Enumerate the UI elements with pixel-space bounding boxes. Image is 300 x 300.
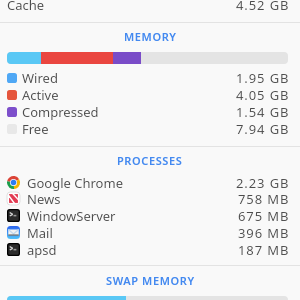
staticText: 4.52 GB xyxy=(236,0,290,13)
staticText: Google Chrome xyxy=(27,174,123,191)
staticText: apsd xyxy=(27,241,57,258)
staticText: MEMORY xyxy=(124,29,177,43)
staticText: 7.94 GB xyxy=(236,120,290,137)
staticText: Compressed xyxy=(22,103,99,120)
other: WindowServer icon xyxy=(7,209,20,222)
button[interactable]: WindowServer icon xyxy=(0,207,300,224)
other: apsd icon xyxy=(7,243,20,256)
button[interactable]: Mail icon xyxy=(0,224,300,241)
button[interactable]: Compressed xyxy=(0,103,300,120)
button[interactable]: apsd icon xyxy=(0,241,300,258)
button[interactable]: Free xyxy=(0,120,300,137)
other: News icon xyxy=(7,192,20,205)
staticText: SWAP MEMORY xyxy=(106,273,195,287)
staticText: 1.95 GB xyxy=(236,69,290,86)
staticText: News xyxy=(27,190,61,207)
staticText: Wired xyxy=(22,69,58,86)
staticText: WindowServer xyxy=(27,207,116,224)
staticText: Free xyxy=(22,120,49,137)
button[interactable]: Cache xyxy=(0,0,300,13)
staticText: 2.23 GB xyxy=(236,174,290,191)
other: Mail icon xyxy=(7,226,20,239)
button[interactable]: Active xyxy=(0,86,300,103)
staticText: 4.05 GB xyxy=(236,86,290,103)
other: Google Chrome icon xyxy=(7,176,20,189)
staticText: PROCESSES xyxy=(117,153,183,167)
staticText: 675 MB xyxy=(238,207,290,224)
staticText: 396 MB xyxy=(238,224,290,241)
staticText: 758 MB xyxy=(238,190,290,207)
staticText: Mail xyxy=(27,224,53,241)
staticText: 187 MB xyxy=(238,241,290,258)
button[interactable]: Google Chrome icon xyxy=(0,174,300,191)
staticText: Cache xyxy=(7,0,45,13)
button[interactable]: Wired xyxy=(0,69,300,86)
staticText: Active xyxy=(22,86,59,103)
staticText: 1.54 GB xyxy=(236,103,290,120)
button[interactable]: News icon xyxy=(0,190,300,207)
